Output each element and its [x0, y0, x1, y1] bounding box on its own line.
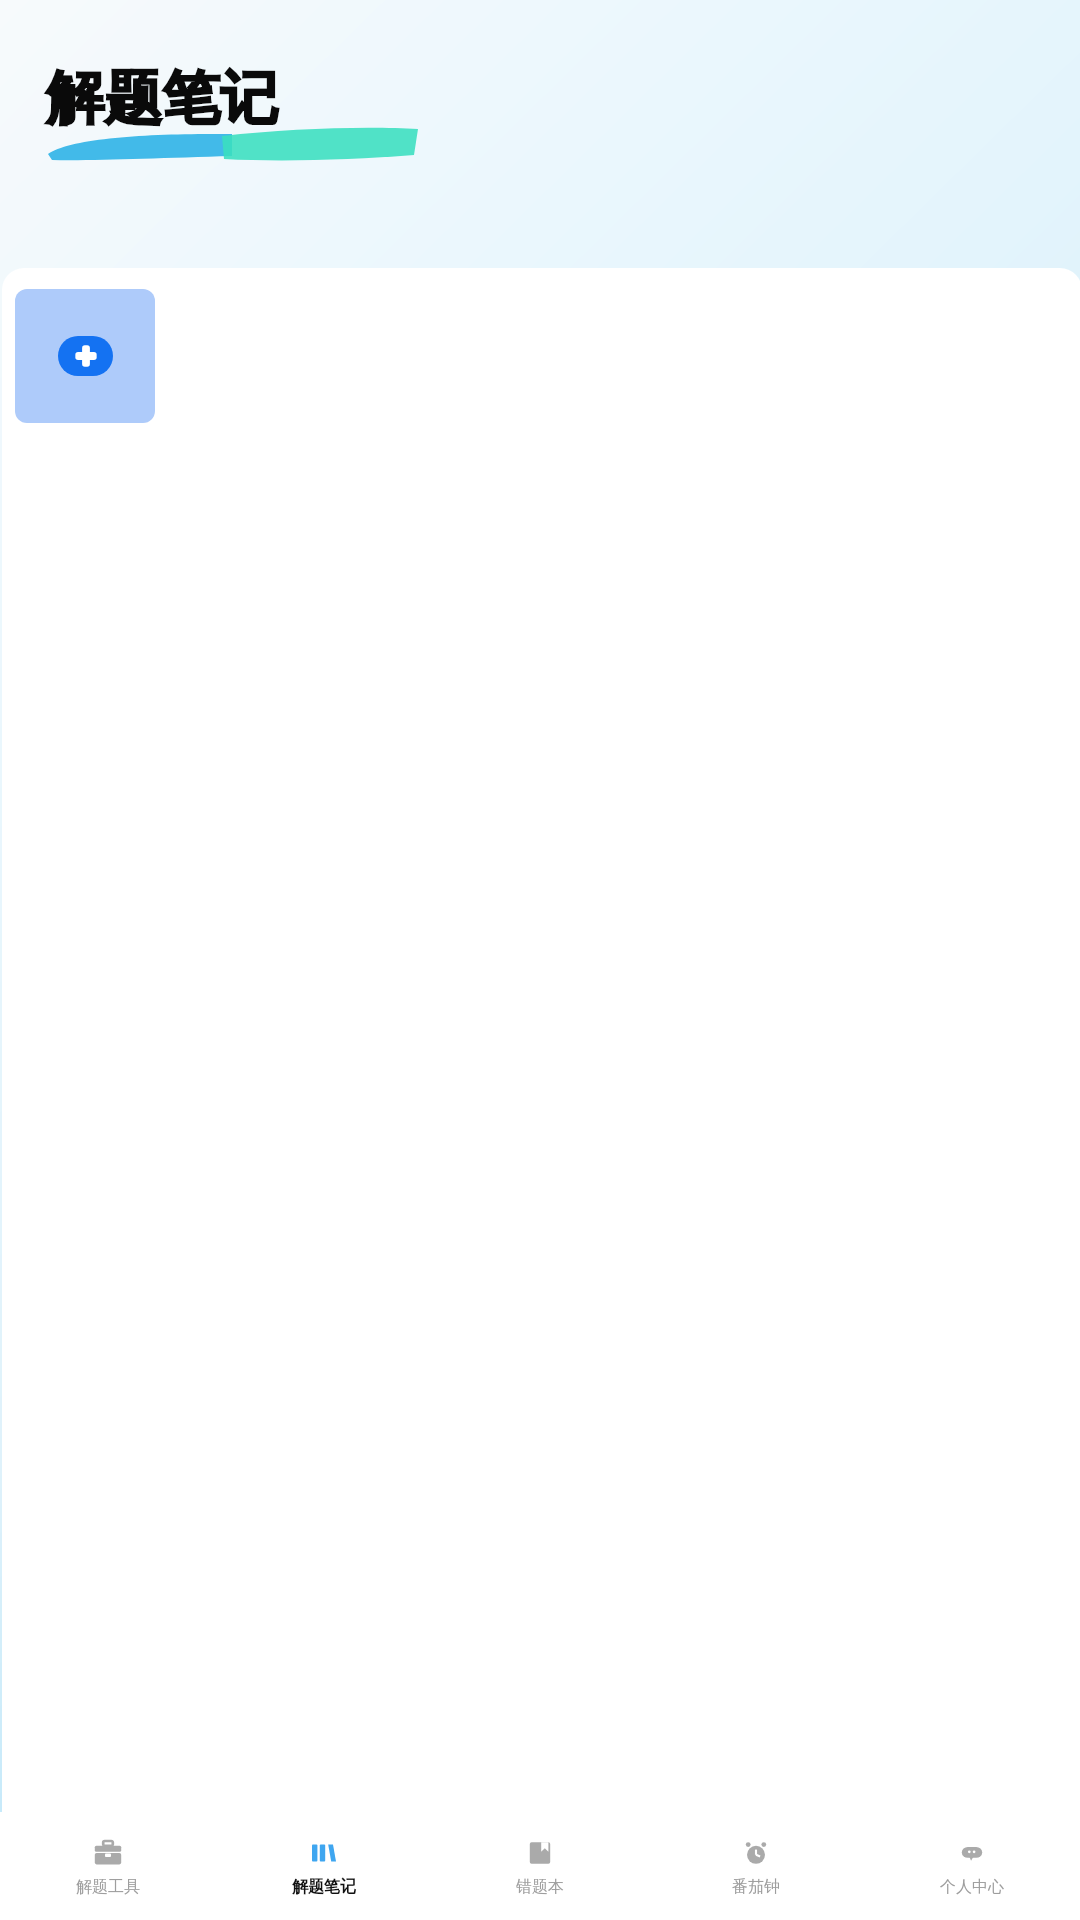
staticText: 解题笔记 — [292, 1877, 356, 1897]
staticText: 个人中心 — [940, 1877, 1004, 1897]
button[interactable]: 解题笔记 — [216, 1828, 432, 1905]
button[interactable]: 番茄钟 — [648, 1828, 864, 1905]
staticText: 解题工具 — [76, 1877, 140, 1897]
button[interactable]: 个人中心 — [864, 1828, 1080, 1905]
button[interactable]: 错题本 — [432, 1828, 648, 1905]
staticText: 解题笔记 — [46, 62, 278, 135]
button[interactable]: 新建笔记 — [15, 289, 155, 423]
other: 新建笔记 — [58, 336, 113, 376]
staticText: 番茄钟 — [732, 1877, 780, 1897]
staticText: 错题本 — [516, 1877, 564, 1897]
button[interactable]: 解题工具 — [0, 1828, 216, 1905]
